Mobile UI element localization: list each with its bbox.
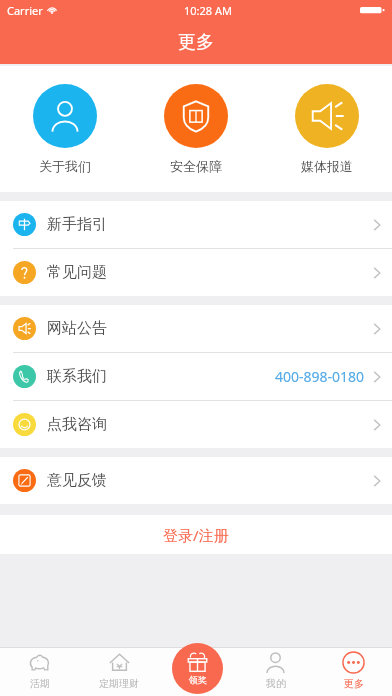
staticText: 新手指引 (47, 215, 107, 234)
button[interactable]: 更多 (314, 641, 392, 696)
button[interactable]: 网站公告 (0, 305, 392, 352)
staticText: 更多 (178, 31, 214, 54)
button[interactable]: 点我咨询 (0, 401, 392, 448)
staticText: 媒体报道 (301, 158, 353, 174)
staticText: 点我咨询 (47, 415, 107, 434)
staticText: 意见反馈 (47, 471, 107, 490)
staticText: 关于我们 (39, 158, 91, 174)
staticText: 领奖 (189, 674, 207, 685)
staticText: 400-898-0180 (275, 367, 365, 386)
staticText: 常见问题 (47, 263, 107, 282)
staticText: 我的 (266, 677, 286, 690)
button[interactable]: 活期 (0, 641, 79, 696)
button[interactable]: 常见问题 (0, 249, 392, 296)
staticText: Carrier (7, 3, 43, 18)
staticText: 网站公告 (47, 319, 107, 338)
button[interactable]: 安全保障 (130, 66, 261, 192)
button[interactable]: 联系我们 (0, 353, 392, 400)
button[interactable]: 登录/注册 (0, 515, 392, 554)
button[interactable]: 意见反馈 (0, 457, 392, 504)
button[interactable]: 媒体报道 (261, 66, 392, 192)
staticText: 10:28 AM (184, 3, 232, 18)
button[interactable]: 定期理财 (79, 641, 158, 696)
button[interactable]: 我的 (236, 641, 314, 696)
staticText: 活期 (30, 677, 50, 690)
button[interactable]: 新手指引 (0, 201, 392, 248)
staticText: 更多 (344, 677, 364, 690)
staticText: 联系我们 (47, 367, 107, 386)
button[interactable]: 领奖 (172, 643, 223, 694)
staticText: 安全保障 (170, 158, 222, 174)
button[interactable]: 关于我们 (0, 66, 130, 192)
staticText: 登录/注册 (163, 525, 229, 545)
staticText: 定期理财 (99, 677, 139, 690)
